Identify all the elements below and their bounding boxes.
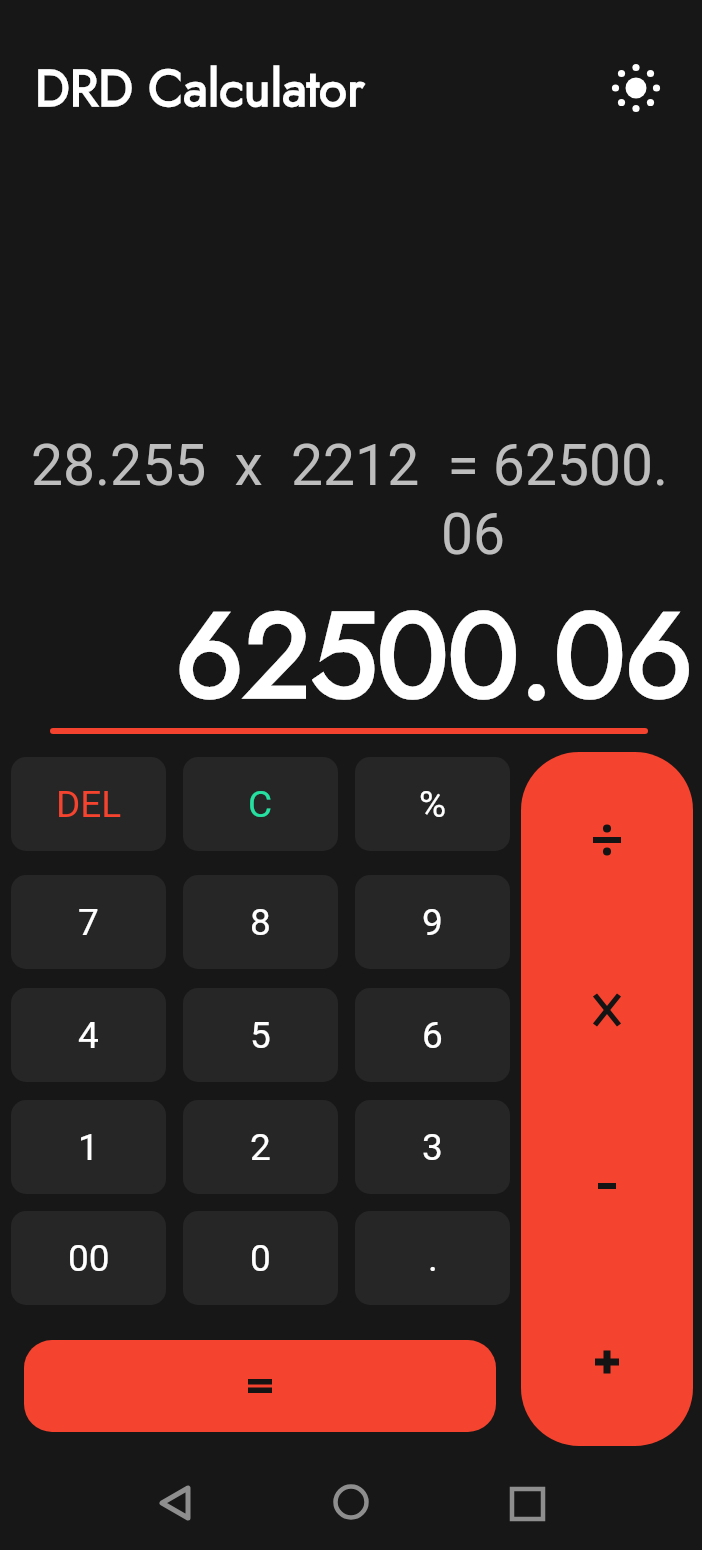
button[interactable]: Home [301,1450,401,1550]
button[interactable]: % [355,757,510,851]
staticText: 28.255 x 2212 = 62500. [31,432,669,499]
staticText: 62500.06 [0,571,693,742]
button[interactable]: 3 [355,1100,510,1194]
staticText: . [428,1237,438,1280]
staticText: C [248,783,273,826]
button[interactable]: divide [521,755,693,925]
button[interactable]: 0 [183,1211,338,1305]
button[interactable]: 9 [355,875,510,969]
button[interactable]: 6 [355,988,510,1082]
button[interactable]: minus [521,1101,693,1271]
staticText: 00 [68,1237,110,1280]
staticText: 06 [441,501,506,568]
button[interactable]: C [183,757,338,851]
button[interactable]: 1 [11,1100,166,1194]
button[interactable]: 2 [183,1100,338,1194]
button[interactable]: Toggle theme [596,48,676,128]
staticText: 9 [422,901,443,944]
button[interactable]: 7 [11,875,166,969]
button[interactable]: DEL [11,757,166,851]
staticText: 1 [78,1126,99,1169]
button[interactable]: . [355,1211,510,1305]
button[interactable]: multiply [521,925,693,1095]
staticText: 8 [250,901,271,944]
button[interactable]: 5 [183,988,338,1082]
staticText: 7 [78,901,99,944]
button[interactable]: 8 [183,875,338,969]
staticText: DRD Calculator [35,51,365,125]
staticText: 2 [250,1126,271,1169]
button[interactable]: 00 [11,1211,166,1305]
staticText: 4 [78,1014,99,1057]
staticText: 5 [250,1014,271,1057]
staticText: DEL [56,783,122,826]
button[interactable]: Back [125,1450,225,1550]
staticText: 3 [422,1126,443,1169]
button[interactable]: 4 [11,988,166,1082]
staticText: 0 [250,1237,271,1280]
staticText: % [419,783,447,826]
button[interactable]: plus [521,1277,693,1446]
button[interactable]: Recents [476,1450,576,1550]
button[interactable]: Equals [24,1340,496,1432]
staticText: 6 [422,1014,443,1057]
